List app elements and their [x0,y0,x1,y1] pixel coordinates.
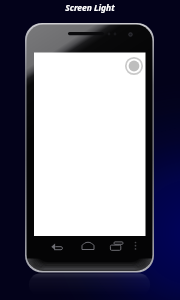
button[interactable]: Toggle light [125,57,143,75]
staticText: Screen Light [65,2,115,14]
